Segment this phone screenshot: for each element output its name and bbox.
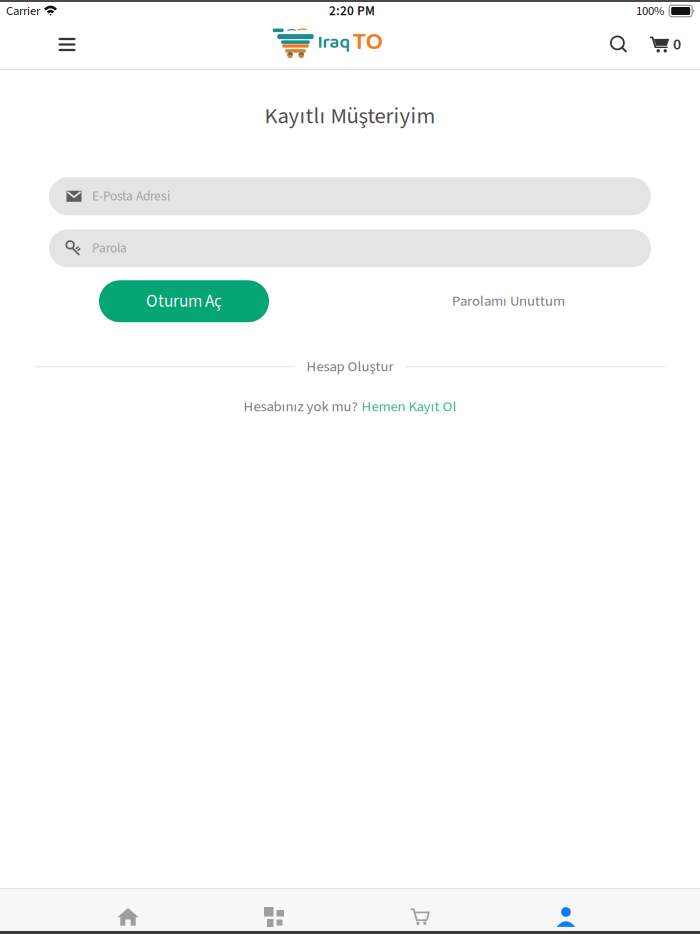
staticText: TO: [352, 22, 383, 62]
staticText: Parola: [92, 239, 127, 258]
staticText: E-Posta Adresi: [92, 187, 170, 206]
button[interactable]: Categories: [201, 896, 347, 934]
staticText: Hemen Kayıt Ol: [361, 396, 456, 417]
staticText: Oturum Aç: [146, 289, 222, 314]
button[interactable]: Home: [55, 896, 201, 934]
button[interactable]: Search: [597, 20, 641, 69]
button[interactable]: Account: [493, 896, 639, 934]
button[interactable]: Cart, 0 items: [650, 20, 681, 69]
button[interactable]: Cart: [347, 896, 493, 934]
staticText: Parolamı Unuttum: [452, 291, 565, 312]
staticText: Kayıtlı Müşteriyim: [264, 100, 435, 132]
staticText: Carrier: [6, 2, 40, 20]
button[interactable]: Oturum Aç: [99, 280, 269, 322]
staticText: Iraq: [317, 27, 350, 57]
staticText: 0: [673, 33, 681, 56]
button[interactable]: Hemen Kayıt Ol: [361, 396, 456, 417]
staticText: 100%: [636, 2, 664, 20]
staticText: Hesabınız yok mu?: [243, 396, 357, 417]
staticText: 2:20 PM: [329, 1, 375, 20]
staticText: Hesap Oluştur: [306, 356, 393, 377]
button[interactable]: Parolamı Unuttum: [452, 280, 565, 322]
button[interactable]: Menu: [45, 20, 89, 69]
